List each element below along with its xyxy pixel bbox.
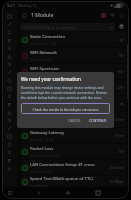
button[interactable]: Rail item 13 <box>2 108 17 116</box>
button[interactable]: Check the results in the tab you can acc… <box>21 103 110 114</box>
button[interactable]: 192.168.1.0/24 or hostname <box>20 23 115 31</box>
staticText: We need your confirmation <box>21 76 81 82</box>
button[interactable]: CONTINUE <box>86 117 110 124</box>
staticText: Check the results in the tab you can acc… <box>21 107 110 111</box>
button[interactable]: Rail item 15 <box>2 124 17 132</box>
staticText: CANCEL <box>68 118 81 123</box>
staticText: 22% <box>117 85 124 90</box>
staticText: WiFi Spectrum <box>30 66 59 72</box>
staticText: WiFi Network <box>30 50 57 56</box>
staticText: No signal found <box>30 73 56 78</box>
staticText: Running this module may change device se… <box>21 85 110 100</box>
staticText: Nearby Tr… <box>18 3 39 8</box>
button[interactable]: Filter <box>108 11 117 20</box>
button[interactable]: Rail item 2 <box>2 20 17 28</box>
staticText: Completed <box>30 183 48 187</box>
staticText: 192.168.1.0/24 or hostname <box>22 25 75 30</box>
button[interactable]: Rail item 8 <box>2 68 17 76</box>
button[interactable]: Back <box>31 187 47 199</box>
staticText: Packet Loss <box>30 146 54 152</box>
staticText: Weak · -78 dBm <box>30 89 55 94</box>
staticText: 9:41 <box>7 3 15 8</box>
button[interactable]: More options <box>117 11 126 20</box>
button[interactable]: LAN Connections Setup #1 cross people c2… <box>20 160 126 175</box>
button[interactable]: Rail item 19 <box>2 156 17 164</box>
button[interactable]: Record <box>99 11 108 20</box>
button[interactable]: WiFi Signal Quality <box>20 80 126 95</box>
staticText: Router <box>30 98 44 104</box>
button[interactable]: DNS Resolver <box>20 112 126 127</box>
staticText: 0% <box>119 53 124 58</box>
button[interactable]: Home <box>60 187 76 199</box>
button[interactable]: Rail item 5 <box>2 44 17 52</box>
button[interactable]: Apps <box>2 187 17 199</box>
staticText: Average 18 ms <box>30 137 54 142</box>
button[interactable]: Rail item 6 <box>2 52 17 60</box>
staticText: 92 Mbps <box>110 179 124 184</box>
staticText: 18 ms <box>114 133 124 138</box>
staticText: Disconnected <box>30 57 52 62</box>
button[interactable]: Static Connection <box>20 32 126 47</box>
staticText: 12 ms <box>114 117 124 122</box>
button[interactable]: Menu <box>20 11 29 20</box>
button[interactable]: Rail item 7 <box>2 60 17 68</box>
staticText: 1 Module <box>31 12 54 19</box>
button[interactable]: Rail item 1 <box>2 12 17 20</box>
button[interactable]: Speed Test (Multi-queue of TTL) <box>20 176 126 187</box>
button[interactable]: Gateway Latency <box>20 128 126 143</box>
button[interactable]: Router <box>20 96 126 111</box>
button[interactable]: Rail item 3 <box>2 28 17 36</box>
staticText: Gateway Latency <box>30 130 64 136</box>
staticText: n/a <box>118 69 124 74</box>
staticText: Speed Test (Multi-queue of TTL) <box>30 176 93 182</box>
button[interactable]: Rail item 9 <box>2 76 17 84</box>
staticText: CONTINUE <box>89 118 107 123</box>
button[interactable]: Rail item 20 <box>2 164 17 172</box>
button[interactable]: Rail item 10 <box>2 84 17 92</box>
button[interactable]: Scan <box>117 22 126 31</box>
button[interactable]: Packet Loss <box>20 144 126 159</box>
staticText: 0% <box>119 149 124 154</box>
staticText: up <box>119 37 124 42</box>
staticText: Static Connection <box>30 34 66 40</box>
button[interactable]: Rail item 11 <box>2 92 17 100</box>
staticText: No drops detected <box>30 153 60 158</box>
staticText: Scan finished <box>30 169 52 174</box>
button[interactable]: Rail item 12 <box>2 100 17 108</box>
button[interactable]: Rail item 4 <box>2 36 17 44</box>
button[interactable]: Rail item 18 <box>2 148 17 156</box>
button[interactable]: Rail item 17 <box>2 140 17 148</box>
staticText: 24 hosts <box>110 165 124 170</box>
button[interactable]: Rail item 16 <box>2 132 17 140</box>
staticText: Connected · LAN <box>30 41 57 46</box>
button[interactable]: WiFi Spectrum <box>20 64 126 79</box>
staticText: LAN Connections Setup #1 cross people c2… <box>30 162 109 168</box>
button[interactable]: CANCEL <box>65 117 84 124</box>
button[interactable]: Recents <box>90 187 106 199</box>
staticText: WiFi Signal Quality <box>30 82 68 88</box>
staticText: Reachable 1.2 ms <box>30 105 58 110</box>
button[interactable]: Rail item 14 <box>2 116 17 124</box>
staticText: ok <box>120 101 124 106</box>
button[interactable]: WiFi Network <box>20 48 126 63</box>
